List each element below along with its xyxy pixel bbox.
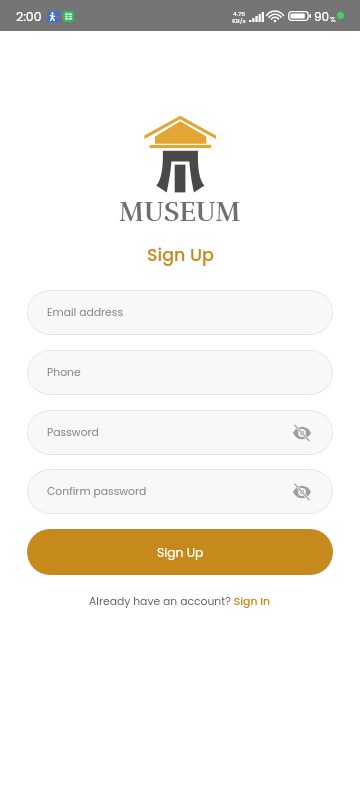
button[interactable]: Phone [27,350,333,395]
button[interactable]: Email address [27,290,333,335]
staticText: 2:00 [16,8,42,25]
staticText: Phone [47,365,81,380]
staticText: Sign Up [157,544,204,561]
button[interactable]: Confirm password [27,469,333,514]
staticText: Already have an account? Sign In [89,594,271,609]
button[interactable]: Toggle password visibility [289,420,315,446]
staticText: Password [47,425,99,440]
staticText: Email address [47,305,124,320]
button[interactable]: Toggle password visibility [289,479,315,505]
staticText: % [330,14,336,24]
button[interactable]: Sign Up [27,529,333,575]
button[interactable]: Password [27,410,333,455]
staticText: Sign Up [147,243,214,268]
staticText: Confirm password [47,484,147,499]
button[interactable]: Already have an account? Sign In [89,594,271,609]
staticText: 4.75 KB/s [232,10,246,25]
staticText: 90 [314,8,330,25]
staticText: MUSEUM [119,195,241,228]
